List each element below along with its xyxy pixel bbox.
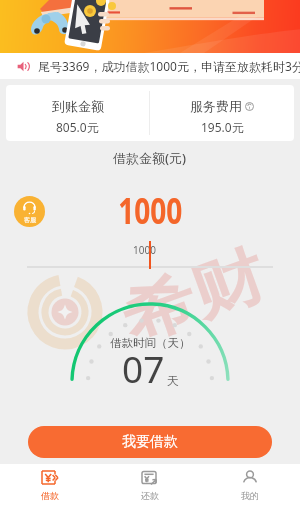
staticText: 805.0元 bbox=[56, 119, 99, 135]
staticText: 我的 bbox=[241, 490, 259, 501]
staticText: 还款 bbox=[141, 490, 159, 501]
staticText: 客服 bbox=[24, 216, 36, 224]
staticText: 希财 bbox=[112, 236, 276, 359]
staticText: 1000 bbox=[118, 186, 183, 235]
button[interactable]: 还款 bbox=[100, 464, 200, 506]
staticText: 服务费用 bbox=[190, 98, 242, 114]
staticText: 07 bbox=[122, 343, 165, 393]
staticText: 天 bbox=[167, 373, 179, 388]
button[interactable]: 活动横幅 bbox=[0, 0, 300, 53]
staticText: 借款金额(元) bbox=[113, 149, 187, 167]
button[interactable]: 我的 bbox=[200, 464, 300, 506]
staticText: 尾号3369，成功借款1000元，申请至放款耗时3分钟 bbox=[38, 58, 300, 74]
staticText: 195.0元 bbox=[201, 119, 244, 135]
button[interactable]: 服务费用 bbox=[150, 85, 294, 141]
button[interactable]: 客服 bbox=[14, 196, 45, 227]
button[interactable]: 尾号3369，成功借款1000元，申请至放款耗时3分钟 bbox=[0, 53, 300, 79]
staticText: 到账金额 bbox=[52, 98, 104, 114]
staticText: 借款 bbox=[41, 490, 59, 501]
button[interactable]: 借款 bbox=[0, 464, 100, 506]
staticText: 借款时间（天） bbox=[110, 336, 191, 350]
button[interactable]: 我要借款 bbox=[28, 426, 272, 458]
button[interactable]: 到账金额 bbox=[6, 85, 149, 141]
staticText: 我要借款 bbox=[122, 433, 178, 451]
staticText: 1000 bbox=[133, 243, 156, 257]
